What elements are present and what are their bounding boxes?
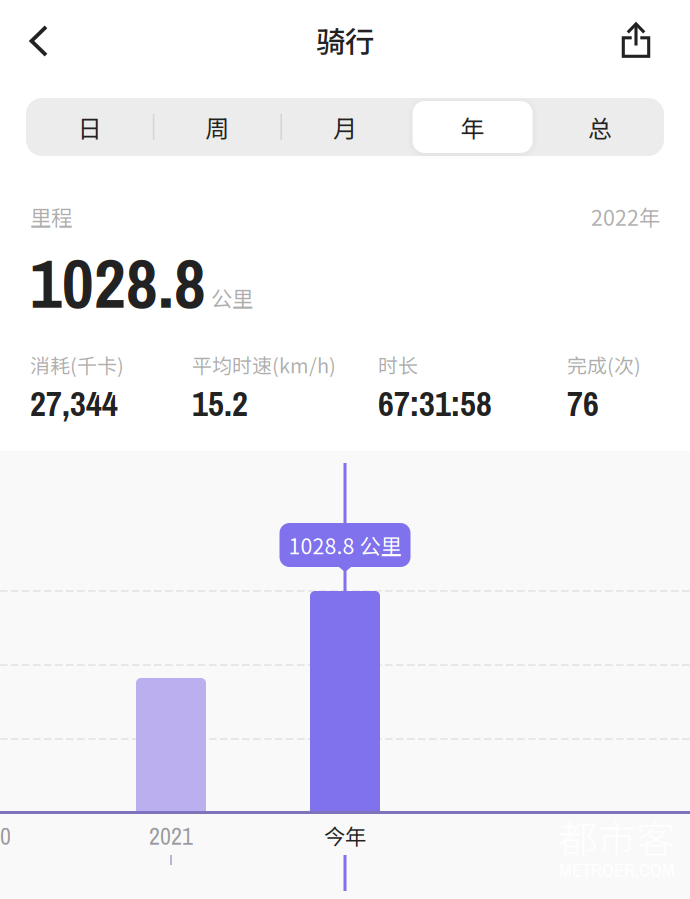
staticText: 27,344 (30, 380, 118, 427)
button[interactable]: 月 (281, 98, 409, 156)
button[interactable]: Share (608, 0, 664, 80)
staticText: 今年 (324, 820, 366, 851)
staticText: 2022年 (591, 201, 660, 232)
staticText: 总 (588, 110, 612, 144)
button[interactable]: 周 (154, 98, 281, 156)
staticText: 平均时速(km/h) (192, 350, 336, 379)
staticText: 15.2 (192, 380, 248, 427)
staticText: 骑行 (316, 19, 374, 61)
staticText: 都市客 (558, 809, 675, 865)
staticText: 1028.8 (30, 236, 206, 329)
staticText: 日 (78, 110, 102, 144)
button[interactable]: Back (11, 1, 67, 81)
staticText: 76 (567, 380, 599, 427)
staticText: 里程 (30, 201, 72, 232)
staticText: 公里 (211, 282, 253, 313)
staticText: 月 (333, 110, 357, 144)
staticText: 2021 (149, 820, 193, 852)
staticText: 时长 (378, 350, 418, 379)
staticText: 20 (0, 820, 11, 852)
staticText: 完成(次) (567, 350, 641, 379)
staticText: 年 (461, 110, 485, 144)
button[interactable]: 总 (536, 98, 664, 156)
button[interactable]: 年 (409, 98, 536, 156)
staticText: 1028.8 公里 (288, 530, 401, 560)
button[interactable]: 日 (26, 98, 154, 156)
staticText: 消耗(千卡) (30, 350, 124, 379)
staticText: 周 (205, 110, 229, 144)
staticText: 67:31:58 (378, 380, 492, 427)
